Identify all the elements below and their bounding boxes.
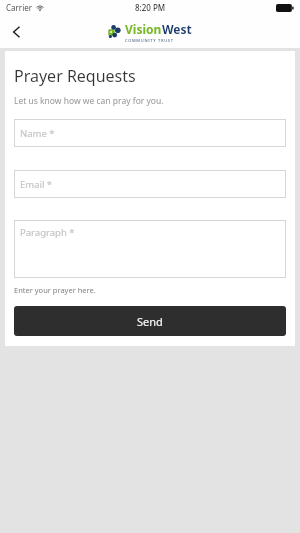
staticText: West <box>162 21 192 37</box>
staticText: Email * <box>20 178 53 191</box>
staticText: COMMUNITY TRUST <box>125 38 174 43</box>
staticText: Let us know how we can pray for you. <box>14 95 164 107</box>
button[interactable]: Send <box>14 306 286 336</box>
staticText: Paragraph * <box>20 226 75 239</box>
staticText: Send <box>137 314 163 329</box>
button[interactable]: Paragraph * <box>14 220 286 278</box>
button[interactable]: Email * <box>14 170 286 198</box>
button[interactable]: Name * <box>14 119 286 147</box>
staticText: Enter your prayer here. <box>14 285 96 295</box>
button[interactable]: Back <box>0 15 34 48</box>
staticText: 8:20 PM <box>135 2 166 13</box>
staticText: Vision <box>125 21 162 37</box>
staticText: Name * <box>20 127 55 140</box>
staticText: Prayer Requests <box>14 65 136 87</box>
staticText: Carrier <box>6 2 33 13</box>
